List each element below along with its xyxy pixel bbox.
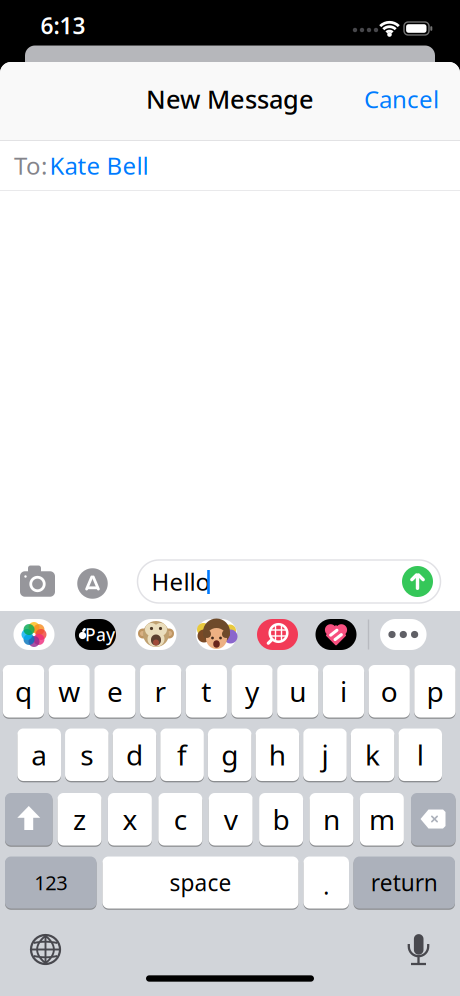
- button[interactable]: c: [158, 793, 202, 845]
- button[interactable]: Cancel: [364, 83, 439, 115]
- button[interactable]: s: [65, 728, 109, 781]
- button[interactable]: o: [369, 665, 410, 717]
- button[interactable]: Images: [257, 619, 298, 650]
- staticText: Hello: [151, 566, 210, 597]
- button[interactable]: z: [57, 793, 101, 845]
- button[interactable]: t: [186, 665, 227, 717]
- button[interactable]: Apple Pay: [75, 619, 116, 650]
- button[interactable]: Shift: [5, 793, 52, 845]
- staticText: g: [221, 736, 238, 773]
- button[interactable]: Next keyboard: [31, 935, 60, 964]
- button[interactable]: j: [303, 728, 347, 781]
- staticText: h: [269, 736, 286, 773]
- button[interactable]: g: [208, 728, 251, 781]
- staticText: Cancel: [364, 83, 439, 115]
- staticText: u: [289, 673, 306, 710]
- staticText: New Message: [146, 82, 314, 116]
- staticText: .: [323, 871, 329, 901]
- button[interactable]: space: [102, 856, 298, 908]
- button[interactable]: u: [277, 665, 318, 717]
- button[interactable]: m: [360, 793, 404, 845]
- button[interactable]: e: [94, 665, 135, 717]
- button[interactable]: Apps: [77, 568, 108, 599]
- button[interactable]: q: [3, 665, 44, 717]
- staticText: Kate Bell: [49, 150, 148, 181]
- staticText: t: [201, 673, 211, 710]
- button[interactable]: Photos: [13, 619, 54, 650]
- button[interactable]: x: [108, 793, 152, 845]
- staticText: c: [174, 801, 187, 838]
- button[interactable]: More: [380, 619, 427, 650]
- staticText: l: [417, 736, 424, 773]
- button[interactable]: Dictation: [403, 928, 433, 968]
- staticText: y: [245, 673, 259, 710]
- button[interactable]: Animoji: [135, 619, 176, 650]
- button[interactable]: Digital Touch: [315, 619, 356, 650]
- button[interactable]: 123: [5, 856, 96, 908]
- button[interactable]: y: [231, 665, 273, 717]
- staticText: z: [73, 801, 86, 838]
- staticText: o: [381, 673, 398, 710]
- button[interactable]: b: [259, 793, 303, 845]
- staticText: j: [321, 736, 328, 773]
- staticText: r: [155, 673, 167, 710]
- button[interactable]: return: [353, 856, 455, 908]
- staticText: m: [369, 801, 395, 838]
- button[interactable]: p: [414, 665, 456, 717]
- staticText: x: [122, 801, 137, 838]
- staticText: 123: [34, 869, 67, 896]
- button[interactable]: Delete: [411, 793, 455, 845]
- button[interactable]: w: [48, 665, 90, 717]
- staticText: f: [177, 736, 187, 773]
- button[interactable]: n: [309, 793, 353, 845]
- button[interactable]: k: [351, 728, 394, 781]
- staticText: p: [426, 673, 443, 710]
- staticText: i: [340, 673, 347, 710]
- button[interactable]: h: [256, 728, 299, 781]
- button[interactable]: Send: [402, 566, 433, 597]
- staticText: d: [126, 736, 143, 773]
- staticText: k: [365, 736, 380, 773]
- staticText: Pay: [85, 623, 115, 646]
- staticText: return: [371, 867, 438, 897]
- button[interactable]: a: [17, 728, 61, 781]
- button[interactable]: i: [323, 665, 364, 717]
- button[interactable]: d: [113, 728, 156, 781]
- button[interactable]: v: [209, 793, 253, 845]
- button[interactable]: l: [398, 728, 442, 781]
- staticText: a: [31, 736, 47, 773]
- button[interactable]: .: [303, 856, 349, 908]
- button[interactable]: f: [160, 728, 204, 781]
- staticText: w: [58, 673, 80, 710]
- staticText: e: [107, 673, 123, 710]
- button[interactable]: Camera: [20, 571, 55, 597]
- button[interactable]: Memoji stickers: [196, 619, 237, 650]
- staticText: To:: [14, 150, 47, 181]
- staticText: 6:13: [40, 10, 85, 40]
- staticText: v: [224, 801, 238, 838]
- button[interactable]: r: [140, 665, 181, 717]
- staticText: n: [323, 801, 340, 838]
- staticText: s: [80, 736, 93, 773]
- button[interactable]: Kate Bell: [49, 150, 148, 181]
- staticText: b: [273, 801, 290, 838]
- staticText: space: [169, 867, 231, 897]
- staticText: q: [15, 673, 32, 710]
